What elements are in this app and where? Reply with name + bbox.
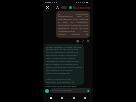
staticText: Je comprends parfaitement que tu souhait…: [58, 12, 88, 37]
button[interactable]: Ecrire un message: [50, 88, 91, 93]
staticText: Ecrire un message: [52, 89, 72, 92]
button[interactable]: Add attachment: [45, 89, 49, 93]
button[interactable]: Close: [45, 5, 50, 10]
button[interactable]: Copy: [76, 39, 79, 42]
button[interactable]: Profile: [81, 94, 89, 102]
button[interactable]: Share: [55, 5, 60, 10]
staticText: Apercu de votre personnalite: [45, 85, 77, 88]
button[interactable]: Artifacts: [70, 94, 78, 102]
button[interactable]: Retry: [86, 39, 89, 42]
button[interactable]: Edit: [81, 39, 84, 42]
button[interactable]: Model selector: [61, 6, 67, 9]
button[interactable]: Chats: [47, 94, 55, 102]
button[interactable]: Send: [86, 89, 89, 92]
staticText: 13:38: [45, 1, 51, 4]
staticText: Je vais aborder ce texte comme presentan…: [46, 45, 82, 84]
button[interactable]: Je vais aborder ce texte comme presentan…: [44, 44, 84, 85]
button[interactable]: Je comprends parfaitement que tu souhait…: [56, 11, 90, 38]
button[interactable]: Projects: [58, 94, 66, 102]
staticText: Nouveau chat: [73, 6, 91, 10]
